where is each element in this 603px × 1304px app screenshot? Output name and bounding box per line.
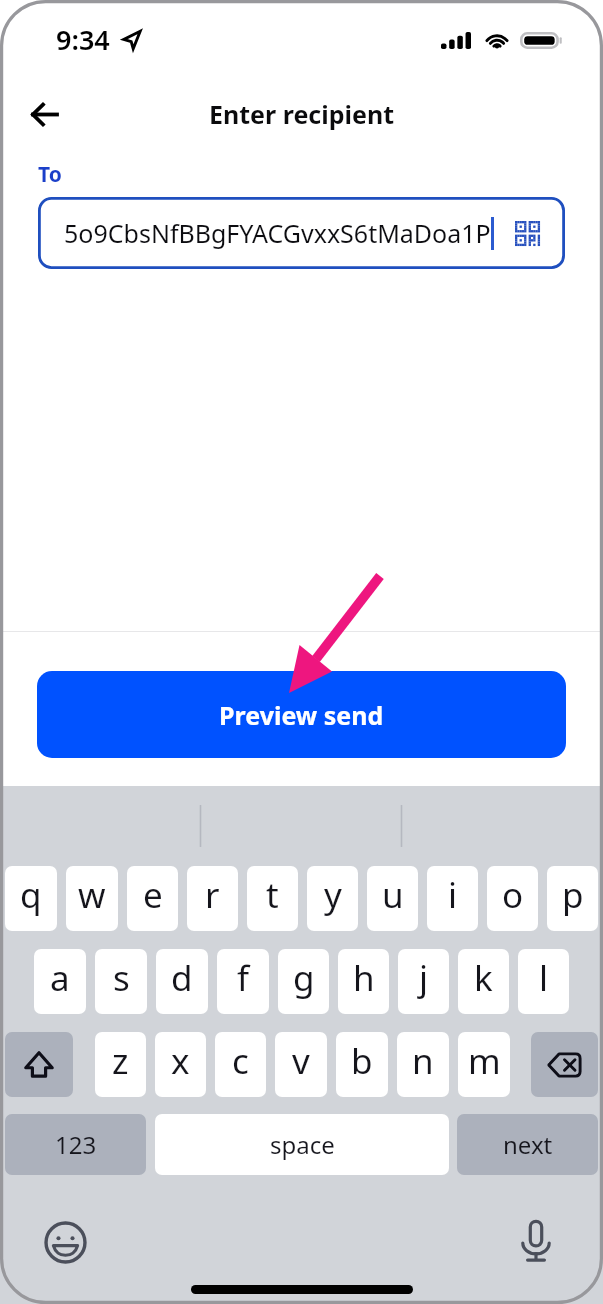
button[interactable]: Dictation bbox=[514, 1220, 558, 1264]
button[interactable]: k bbox=[458, 949, 509, 1014]
button[interactable]: x bbox=[155, 1032, 206, 1097]
staticText: v bbox=[292, 1037, 310, 1085]
button[interactable]: n bbox=[397, 1032, 449, 1097]
staticText: u bbox=[382, 871, 404, 919]
staticText: Preview send bbox=[219, 698, 384, 732]
button[interactable]: Preview send bbox=[37, 671, 566, 758]
button[interactable]: space bbox=[155, 1114, 449, 1175]
button[interactable]: w bbox=[66, 866, 118, 931]
button[interactable]: z bbox=[95, 1032, 146, 1097]
staticText: x bbox=[171, 1037, 190, 1085]
button[interactable]: 123 bbox=[5, 1114, 146, 1175]
button[interactable]: next bbox=[457, 1114, 598, 1175]
staticText: q bbox=[20, 871, 42, 919]
button[interactable]: d bbox=[156, 949, 208, 1014]
staticText: Enter recipient bbox=[209, 97, 394, 131]
staticText: w bbox=[78, 871, 106, 919]
button[interactable]: q bbox=[5, 866, 57, 931]
button[interactable]: a bbox=[34, 949, 86, 1014]
staticText: r bbox=[205, 871, 220, 919]
button[interactable]: o bbox=[487, 866, 538, 931]
staticText: j bbox=[419, 954, 429, 1002]
button[interactable]: Scan QR code bbox=[508, 214, 546, 252]
button[interactable]: m bbox=[458, 1032, 510, 1097]
staticText: 123 bbox=[55, 1128, 97, 1161]
button[interactable]: s bbox=[95, 949, 147, 1014]
button[interactable]: u bbox=[367, 866, 418, 931]
staticText: n bbox=[412, 1037, 434, 1085]
button[interactable]: r bbox=[187, 866, 238, 931]
staticText: e bbox=[143, 871, 163, 919]
button[interactable]: e bbox=[127, 866, 178, 931]
staticText: s bbox=[113, 954, 130, 1002]
button[interactable]: l bbox=[518, 949, 569, 1014]
staticText: o bbox=[502, 871, 524, 919]
button[interactable]: p bbox=[547, 866, 598, 931]
staticText: k bbox=[474, 954, 493, 1002]
staticText: c bbox=[232, 1037, 249, 1085]
staticText: g bbox=[293, 954, 315, 1002]
button[interactable]: y bbox=[307, 866, 358, 931]
button[interactable]: b bbox=[336, 1032, 388, 1097]
staticText: y bbox=[324, 871, 342, 919]
button[interactable]: g bbox=[278, 949, 329, 1014]
staticText: t bbox=[266, 871, 279, 919]
staticText: 9:34 bbox=[56, 21, 110, 58]
button[interactable]: i bbox=[427, 866, 478, 931]
staticText: f bbox=[237, 954, 250, 1002]
button[interactable]: Shift bbox=[5, 1032, 73, 1097]
button[interactable]: Back bbox=[17, 88, 70, 141]
staticText: To bbox=[38, 160, 62, 189]
button[interactable]: c bbox=[215, 1032, 266, 1097]
button[interactable]: Backspace bbox=[531, 1032, 598, 1097]
staticText: d bbox=[171, 954, 193, 1002]
staticText: 5o9CbsNfBBgFYACGvxxS6tMaDoa1P bbox=[64, 216, 491, 250]
button[interactable]: f bbox=[217, 949, 269, 1014]
button[interactable]: v bbox=[275, 1032, 327, 1097]
staticText: i bbox=[448, 871, 458, 919]
staticText: next bbox=[503, 1128, 553, 1161]
staticText: m bbox=[468, 1037, 501, 1085]
staticText: l bbox=[539, 954, 549, 1002]
button[interactable]: t bbox=[247, 866, 298, 931]
staticText: p bbox=[562, 871, 584, 919]
button[interactable]: h bbox=[338, 949, 389, 1014]
button[interactable]: j bbox=[398, 949, 449, 1014]
staticText: a bbox=[50, 954, 70, 1002]
staticText: b bbox=[351, 1037, 373, 1085]
button[interactable]: 5o9CbsNfBBgFYACGvxxS6tMaDoa1P bbox=[38, 197, 565, 269]
button[interactable]: Emoji keyboard bbox=[43, 1220, 87, 1264]
staticText: space bbox=[270, 1128, 335, 1161]
staticText: h bbox=[353, 954, 375, 1002]
staticText: z bbox=[112, 1037, 129, 1085]
